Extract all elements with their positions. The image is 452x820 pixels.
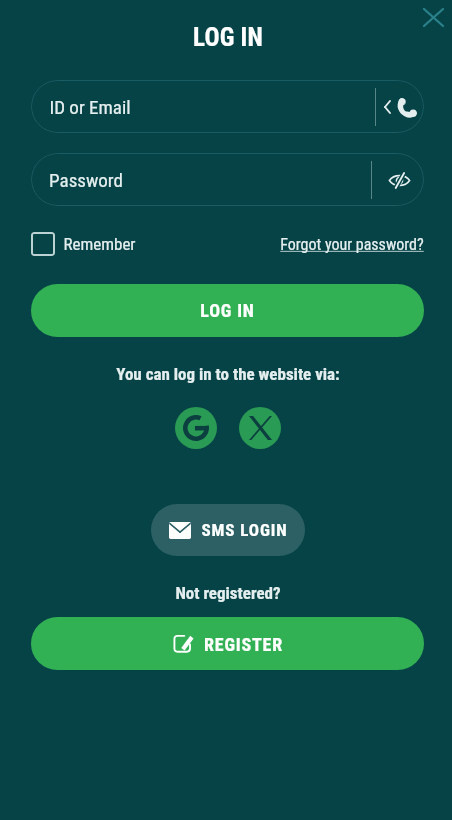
staticText: REGISTER <box>204 634 283 655</box>
button[interactable]: Close <box>415 0 451 35</box>
staticText: Password <box>49 169 123 191</box>
button[interactable]: Remember <box>31 232 136 256</box>
button[interactable]: Sign in with Google <box>175 407 217 449</box>
button[interactable]: SMS LOGIN <box>151 504 305 556</box>
staticText: Not registered? <box>175 583 281 603</box>
button[interactable]: Forgot your password? <box>280 235 424 254</box>
staticText: Remember <box>63 234 136 254</box>
staticText: You can log in to the website via: <box>116 364 340 384</box>
staticText: SMS LOGIN <box>201 520 288 540</box>
button[interactable]: Sign in with X <box>239 407 281 449</box>
staticText: LOG IN <box>200 300 255 321</box>
button[interactable]: REGISTER <box>31 617 424 670</box>
button[interactable]: ID or Email <box>31 80 424 133</box>
staticText: ID or Email <box>49 96 131 118</box>
button[interactable]: Password <box>31 153 424 206</box>
button[interactable]: LOG IN <box>31 284 424 337</box>
staticText: LOG IN <box>193 23 263 52</box>
